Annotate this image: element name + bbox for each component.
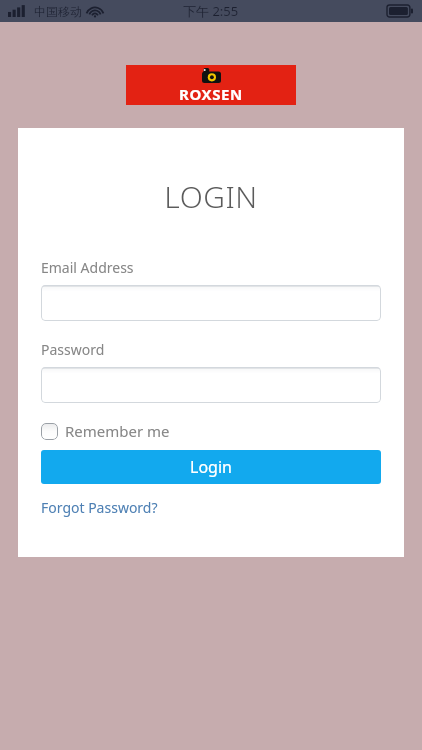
staticText: Remember me [65, 421, 170, 441]
other: Remember me checkbox [41, 423, 58, 440]
staticText: ROXSEN [179, 84, 243, 104]
staticText: 中国移动 [34, 4, 82, 19]
staticText: LOGIN [18, 176, 404, 217]
button[interactable]: Remember me checkbox [41, 421, 170, 441]
button[interactable] [41, 367, 381, 403]
staticText: Email Address [41, 258, 134, 277]
staticText: Forgot Password? [41, 498, 158, 517]
staticText: Login [190, 456, 232, 478]
button[interactable]: Forgot Password? [41, 498, 158, 517]
staticText: 下午 2:55 [183, 2, 239, 20]
button[interactable] [41, 285, 381, 321]
staticText: Password [41, 340, 105, 359]
button[interactable]: Login [41, 450, 381, 484]
